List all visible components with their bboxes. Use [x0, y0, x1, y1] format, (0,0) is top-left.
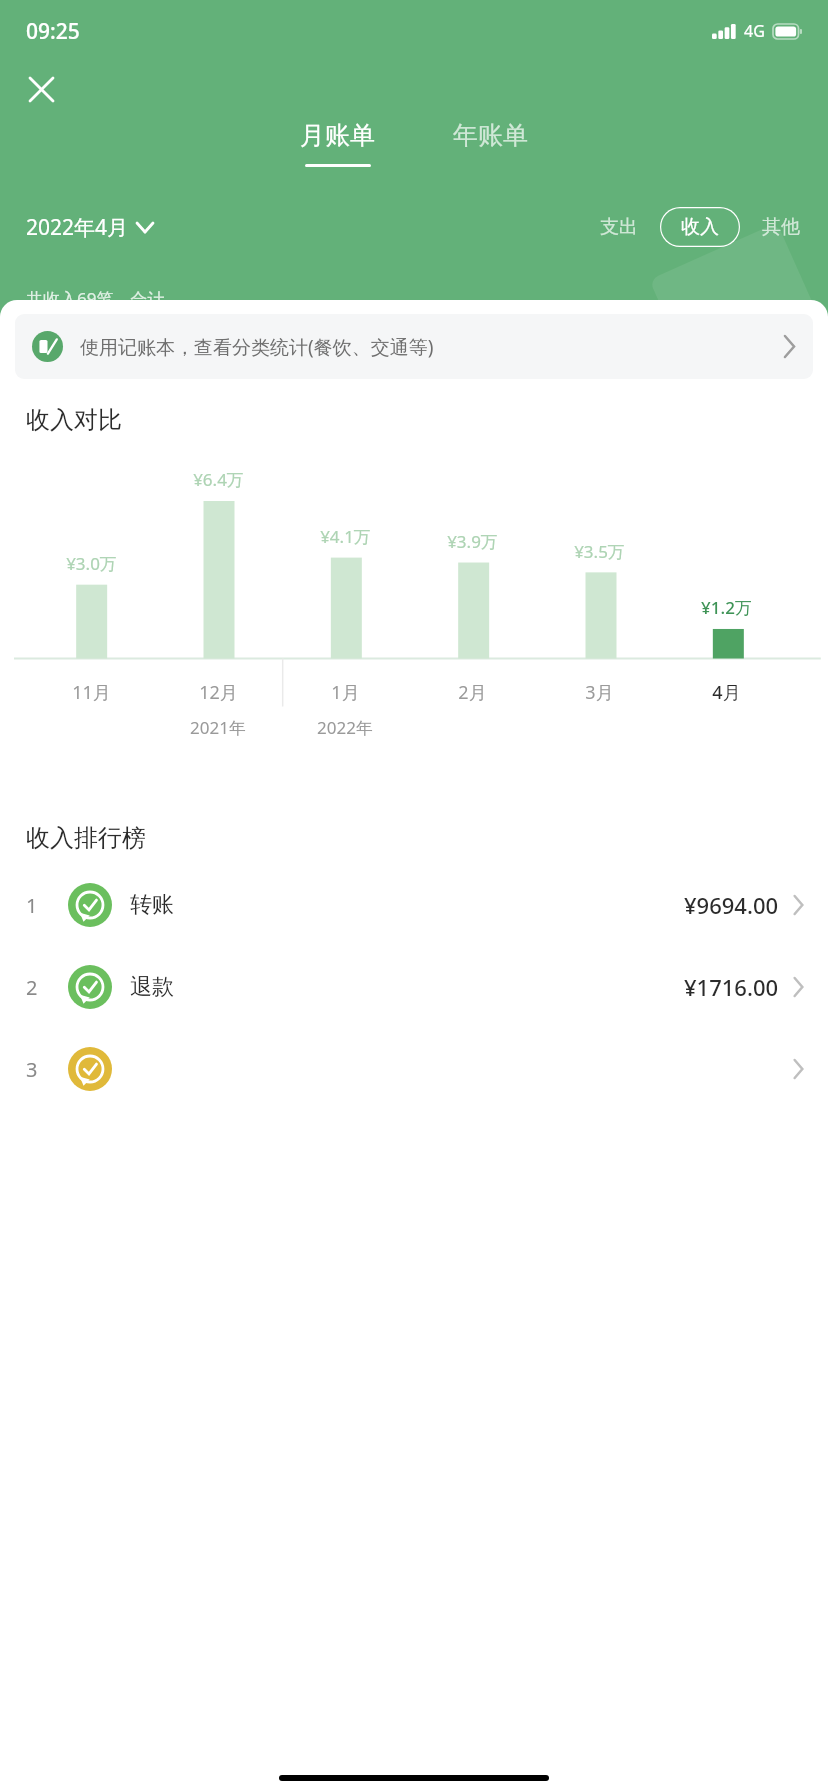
staticText: ¥4.1万	[320, 525, 371, 548]
staticText: 共收入69笔，合计	[26, 287, 165, 310]
staticText: 退款	[130, 973, 174, 1001]
staticText: 2022年	[317, 716, 373, 739]
staticText: 其他	[762, 215, 800, 239]
button[interactable]: 2	[0, 965, 828, 1009]
staticText: ¥3.9万	[447, 530, 498, 553]
staticText: ¥3.5万	[574, 540, 625, 563]
staticText: ¥6.4万	[193, 468, 244, 491]
staticText: 4G	[744, 20, 765, 42]
staticText: 收入	[681, 215, 719, 239]
staticText: 收入排行榜	[26, 823, 146, 853]
button[interactable]: 1	[0, 883, 828, 927]
staticText: 收入对比	[26, 405, 122, 435]
staticText: 4月	[712, 680, 741, 705]
staticText: ¥3.0万	[66, 552, 117, 575]
staticText: 月账单	[300, 120, 375, 151]
button[interactable]: 支出	[594, 209, 644, 245]
staticText: 2022年4月	[26, 213, 129, 242]
button[interactable]: 2022年4月	[26, 213, 153, 242]
staticText: 2月	[458, 680, 487, 705]
button[interactable]: 使用记账本，查看分类统计(餐饮、交通等)	[15, 314, 813, 379]
staticText: 1	[26, 892, 38, 919]
button[interactable]: 3	[0, 1047, 828, 1091]
staticText: 支出	[600, 215, 638, 239]
staticText: ¥1.2万	[701, 596, 752, 619]
staticText: 09:25	[26, 17, 80, 46]
staticText: 转账	[130, 891, 174, 919]
staticText: 3	[26, 1056, 38, 1083]
staticText: 11月	[72, 680, 111, 705]
staticText: 2021年	[190, 716, 246, 739]
staticText: 12月	[199, 680, 238, 705]
staticText: 3月	[585, 680, 614, 705]
staticText: 使用记账本，查看分类统计(餐饮、交通等)	[80, 334, 434, 360]
button[interactable]: Close	[14, 62, 68, 116]
staticText: ¥9694.00	[684, 890, 779, 920]
button[interactable]: 其他	[756, 209, 806, 245]
button[interactable]: 收入	[660, 207, 740, 247]
button[interactable]: 年账单	[443, 116, 538, 171]
staticText: 1月	[331, 680, 360, 705]
staticText: 2	[26, 974, 38, 1001]
staticText: ¥1716.00	[684, 972, 779, 1002]
button[interactable]: 月账单	[290, 116, 385, 171]
staticText: 年账单	[453, 120, 528, 151]
